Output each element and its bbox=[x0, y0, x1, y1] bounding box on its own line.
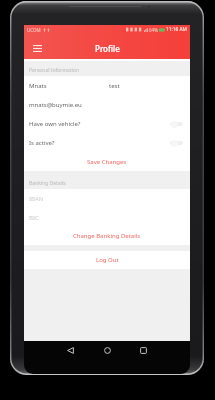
button[interactable]: Is active? bbox=[24, 133, 190, 152]
staticText: BIC bbox=[29, 214, 39, 222]
button[interactable]: Mnats bbox=[24, 76, 190, 95]
staticText: 64% bbox=[149, 27, 158, 33]
staticText: Change Banking Details bbox=[73, 232, 141, 240]
staticText: 11:16 AM bbox=[166, 26, 187, 33]
staticText: mnats@buymie.eu bbox=[29, 101, 82, 109]
staticText: Profile bbox=[95, 43, 120, 54]
button[interactable]: Home bbox=[98, 341, 116, 359]
button[interactable]: Back bbox=[61, 341, 79, 359]
staticText: Personal Information bbox=[29, 67, 80, 74]
button[interactable]: Open navigation menu bbox=[28, 39, 47, 58]
button[interactable]: IBAN bbox=[24, 189, 190, 208]
button[interactable]: Save Changes bbox=[24, 152, 190, 171]
staticText: Save Changes bbox=[87, 158, 127, 166]
button[interactable]: Recent apps bbox=[134, 341, 152, 359]
button[interactable]: mnats@buymie.eu bbox=[24, 95, 190, 114]
button[interactable]: Have own vehicle? bbox=[24, 114, 190, 133]
button[interactable]: Log Out bbox=[24, 251, 190, 269]
staticText: Mnats bbox=[29, 82, 47, 90]
staticText: IBAN bbox=[29, 195, 44, 203]
staticText: Is active? bbox=[29, 139, 55, 147]
button[interactable]: Change Banking Details bbox=[24, 227, 190, 245]
staticText: test bbox=[109, 82, 120, 90]
staticText: UCOM bbox=[27, 27, 41, 33]
staticText: Have own vehicle? bbox=[29, 120, 81, 128]
staticText: Banking Details bbox=[29, 180, 66, 187]
staticText: Log Out bbox=[96, 256, 119, 264]
